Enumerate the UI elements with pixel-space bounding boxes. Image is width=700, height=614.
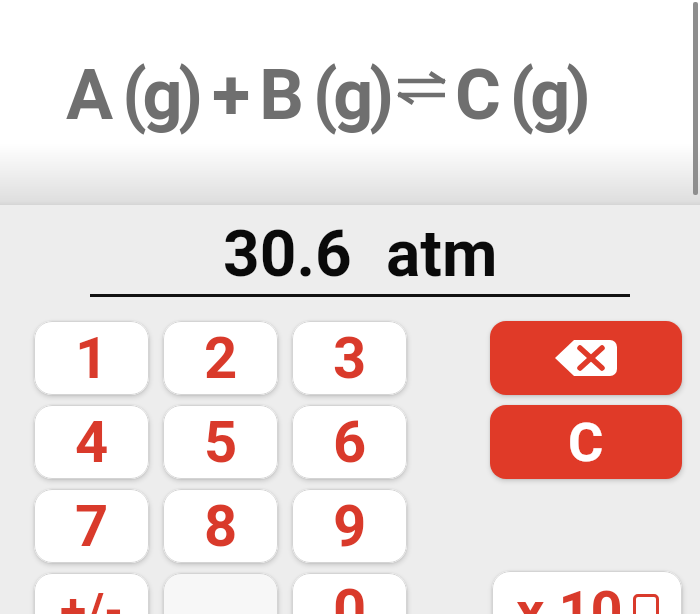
staticText: 0 (333, 576, 367, 614)
button[interactable] (490, 321, 682, 395)
staticText: 8 (204, 492, 238, 560)
button[interactable]: 0 (292, 573, 407, 614)
staticText: 9 (333, 492, 367, 560)
button[interactable]: 9 (292, 489, 407, 563)
staticText: 2 (204, 324, 238, 392)
button[interactable] (163, 573, 278, 614)
button[interactable]: 8 (163, 489, 278, 563)
staticText: 7 (75, 492, 109, 560)
staticText: 1 (75, 324, 109, 392)
button[interactable]: C (490, 405, 682, 479)
button[interactable]: 1 (34, 321, 149, 395)
button[interactable]: 4 (34, 405, 149, 479)
staticText: atm (386, 217, 498, 283)
button[interactable]: 6 (292, 405, 407, 479)
staticText: 5 (204, 408, 238, 476)
button[interactable]: 5 (163, 405, 278, 479)
staticText: C (g) (455, 54, 587, 136)
button[interactable]: 7 (34, 489, 149, 563)
staticText: 3 (333, 324, 367, 392)
staticText: x 10 (516, 579, 623, 614)
staticText: 6 (333, 408, 367, 476)
button[interactable]: +/- (34, 573, 149, 614)
staticText: A (g) + B (g) (66, 54, 390, 136)
staticText: C (568, 411, 604, 474)
button[interactable]: 3 (292, 321, 407, 395)
button[interactable]: 2 (163, 321, 278, 395)
staticText: 4 (75, 408, 109, 476)
button[interactable]: x 10 (492, 571, 682, 614)
staticText: 30.6 (223, 217, 352, 283)
staticText: +/- (60, 582, 123, 614)
